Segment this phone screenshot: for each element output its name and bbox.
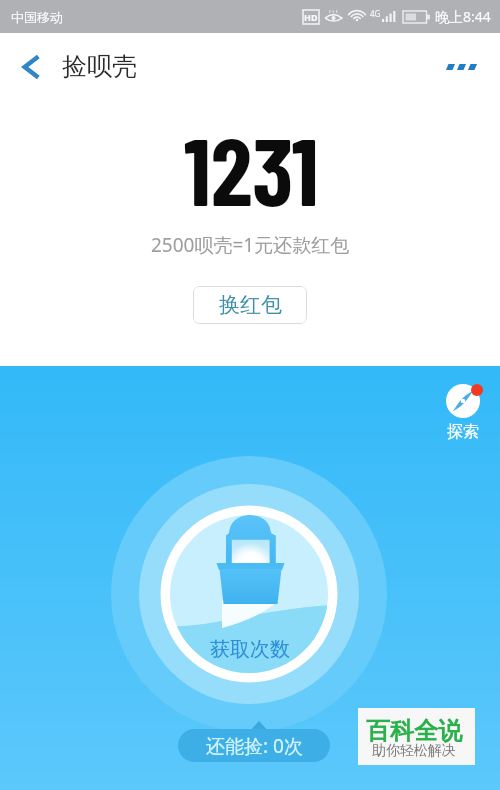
staticText: 百科全说 [366,716,462,746]
staticText: 中国移动 [11,9,63,25]
button[interactable]: More options [438,33,500,100]
staticText: 还能捡: 0次 [206,733,303,759]
staticText: 1231 [184,112,319,225]
button[interactable]: 探索 [446,384,480,442]
staticText: 晚上8:44 [435,7,491,26]
staticText: 助你轻松解决 [372,742,456,760]
staticText: 4G [370,8,381,19]
staticText: 换红包 [219,292,282,318]
staticText: 获取次数 [210,637,290,662]
button[interactable]: Back [0,33,62,100]
staticText: 捡呗壳 [62,51,137,82]
staticText: 探索 [447,422,479,442]
staticText: 2500呗壳=1元还款红包 [151,232,350,258]
button[interactable]: 换红包 [193,286,307,324]
button[interactable]: 还能捡: 0次 [178,729,330,762]
staticText: HD [304,11,318,23]
button[interactable]: 获取次数 [0,366,500,790]
